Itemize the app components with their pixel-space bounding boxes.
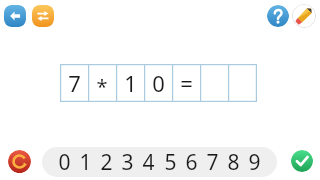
button[interactable]: * [88, 64, 116, 102]
staticText: 7 [68, 68, 81, 98]
button[interactable]: Reset [8, 150, 31, 173]
button[interactable]: 5 [161, 147, 180, 177]
staticText: 5 [164, 148, 177, 177]
button[interactable]: 0 [55, 147, 74, 177]
button[interactable]: 1 [76, 147, 95, 177]
staticText: 9 [248, 148, 261, 177]
button[interactable]: 7 [60, 64, 88, 102]
button[interactable]: 4 [139, 147, 158, 177]
staticText: 8 [227, 148, 240, 177]
button[interactable]: 0 [144, 64, 172, 102]
staticText: 2 [100, 148, 113, 177]
button[interactable]: 7 [203, 147, 222, 177]
staticText: 0 [58, 148, 71, 177]
staticText: 1 [79, 148, 92, 177]
button[interactable]: Confirm [291, 150, 313, 172]
staticText: * [96, 73, 108, 100]
button[interactable] [200, 64, 228, 102]
button[interactable]: Swap operands [32, 5, 54, 27]
staticText: 0 [152, 68, 165, 98]
button[interactable]: 2 [97, 147, 116, 177]
button[interactable]: 3 [118, 147, 137, 177]
button[interactable]: Help [267, 5, 289, 27]
staticText: 4 [142, 148, 155, 177]
button[interactable]: = [172, 64, 200, 102]
staticText: 6 [185, 148, 198, 177]
button[interactable]: 8 [224, 147, 243, 177]
button[interactable]: 1 [116, 64, 144, 102]
staticText: = [180, 68, 193, 98]
staticText: 1 [124, 68, 137, 98]
button[interactable]: Edit [292, 4, 316, 28]
button[interactable]: 9 [245, 147, 264, 177]
button[interactable]: Back [4, 5, 26, 27]
button[interactable]: 6 [182, 147, 201, 177]
button[interactable] [228, 64, 257, 102]
staticText: 3 [121, 148, 134, 177]
staticText: 7 [206, 148, 219, 177]
